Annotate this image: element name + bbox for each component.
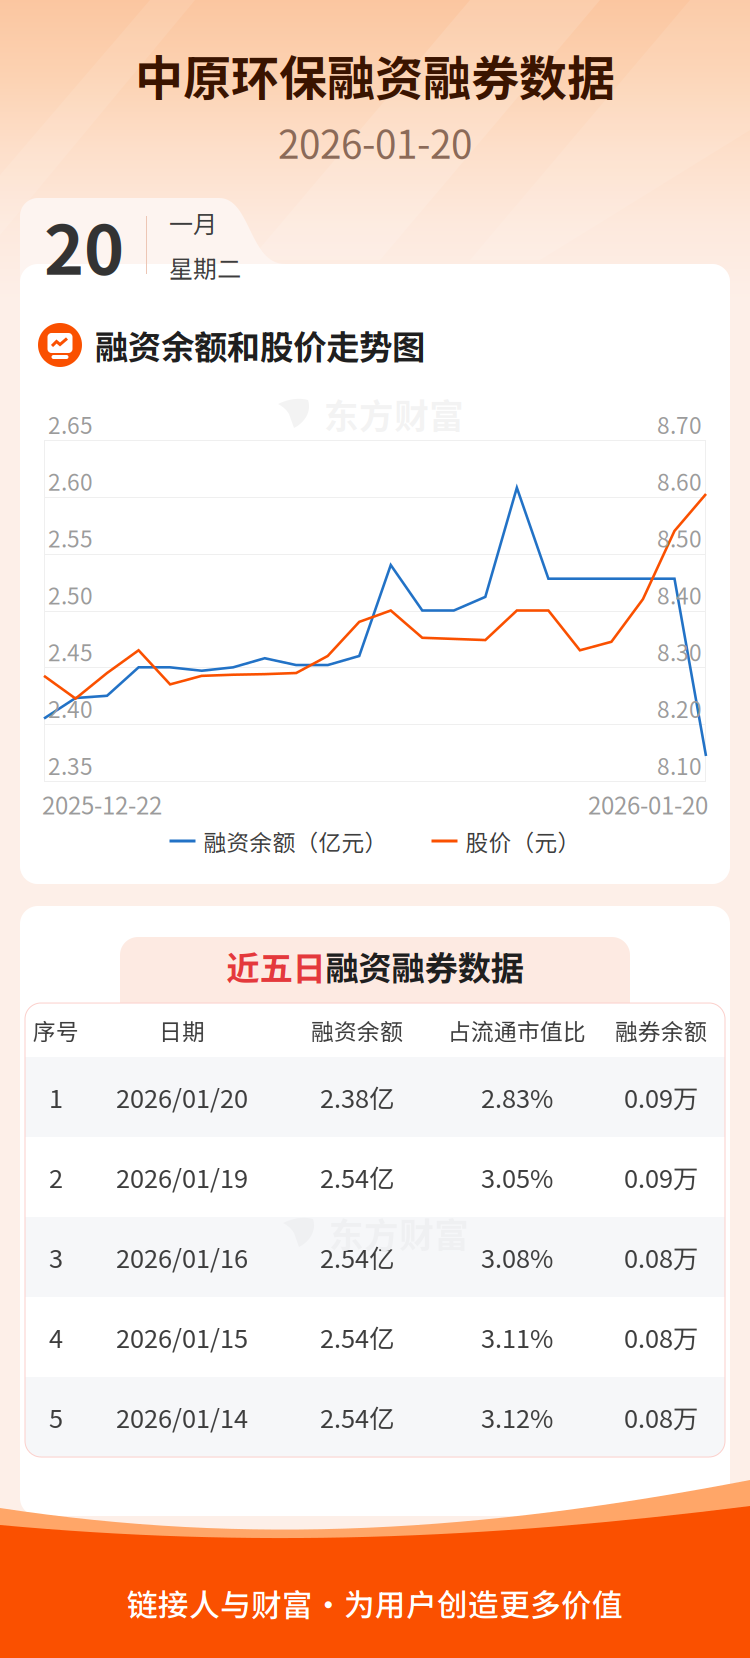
staticText: 2.35 bbox=[48, 749, 93, 781]
staticText: 2026-01-20 bbox=[278, 114, 472, 170]
staticText: 日期 bbox=[159, 1014, 205, 1046]
staticText: 2026/01/19 bbox=[116, 1159, 248, 1195]
staticText: 2.54亿 bbox=[320, 1399, 394, 1435]
staticText: 2.54亿 bbox=[320, 1239, 394, 1275]
staticText: 链接人与财富·为用户创造更多价值 bbox=[127, 1581, 623, 1625]
staticText: 融券余额 bbox=[615, 1014, 707, 1046]
staticText: 中原环保融资融券数据 bbox=[135, 40, 615, 110]
staticText: 8.60 bbox=[657, 464, 702, 497]
staticText: 8.70 bbox=[657, 408, 702, 440]
staticText: 2026-01-20 bbox=[588, 787, 708, 821]
staticText: 5 bbox=[49, 1399, 63, 1435]
staticText: 0.08万 bbox=[624, 1399, 698, 1435]
staticText: 一月 bbox=[169, 205, 217, 240]
staticText: 2026/01/15 bbox=[116, 1319, 248, 1355]
staticText: 股价（元） bbox=[465, 825, 580, 857]
staticText: 星期二 bbox=[169, 250, 241, 285]
staticText: 融资余额（亿元） bbox=[203, 825, 387, 857]
staticText: 近五日 bbox=[226, 942, 325, 990]
staticText: 2025-12-22 bbox=[42, 787, 162, 821]
staticText: 0.09万 bbox=[624, 1079, 698, 1115]
staticText: 融资余额和股价走势图 bbox=[95, 321, 425, 369]
staticText: 4 bbox=[49, 1319, 63, 1355]
staticText: 8.10 bbox=[657, 749, 702, 781]
staticText: 8.40 bbox=[657, 578, 702, 611]
staticText: 2.38亿 bbox=[320, 1079, 394, 1115]
staticText: 2.54亿 bbox=[320, 1319, 394, 1355]
staticText: 3.05% bbox=[481, 1159, 553, 1195]
staticText: 3.08% bbox=[481, 1239, 553, 1275]
staticText: 2026/01/16 bbox=[116, 1239, 248, 1275]
staticText: 2.54亿 bbox=[320, 1159, 394, 1195]
staticText: 3 bbox=[49, 1239, 63, 1275]
staticText: 东方财富 bbox=[329, 1208, 469, 1258]
staticText: 2.55 bbox=[48, 521, 93, 554]
staticText: 融资融券数据 bbox=[325, 942, 523, 990]
staticText: 3.11% bbox=[481, 1319, 553, 1355]
staticText: 3.12% bbox=[481, 1399, 553, 1435]
staticText: 8.20 bbox=[657, 692, 702, 725]
staticText: 8.30 bbox=[657, 635, 702, 668]
staticText: 2026/01/20 bbox=[116, 1079, 248, 1115]
staticText: 序号 bbox=[33, 1014, 79, 1046]
staticText: 2.40 bbox=[48, 692, 93, 725]
staticText: 2.60 bbox=[48, 464, 93, 497]
staticText: 占流通市值比 bbox=[448, 1014, 586, 1046]
staticText: 融资余额 bbox=[311, 1014, 403, 1046]
staticText: 东方财富 bbox=[324, 389, 464, 439]
staticText: 2.45 bbox=[48, 635, 93, 668]
staticText: 0.08万 bbox=[624, 1239, 698, 1275]
staticText: 0.08万 bbox=[624, 1319, 698, 1355]
staticText: 8.50 bbox=[657, 521, 702, 554]
staticText: 2026/01/14 bbox=[116, 1399, 248, 1435]
staticText: 2 bbox=[49, 1159, 63, 1195]
staticText: 1 bbox=[49, 1079, 63, 1115]
staticText: 2.83% bbox=[481, 1079, 553, 1115]
staticText: 20 bbox=[44, 196, 124, 294]
staticText: 2.65 bbox=[48, 408, 93, 440]
staticText: 0.09万 bbox=[624, 1159, 698, 1195]
staticText: 2.50 bbox=[48, 578, 93, 611]
